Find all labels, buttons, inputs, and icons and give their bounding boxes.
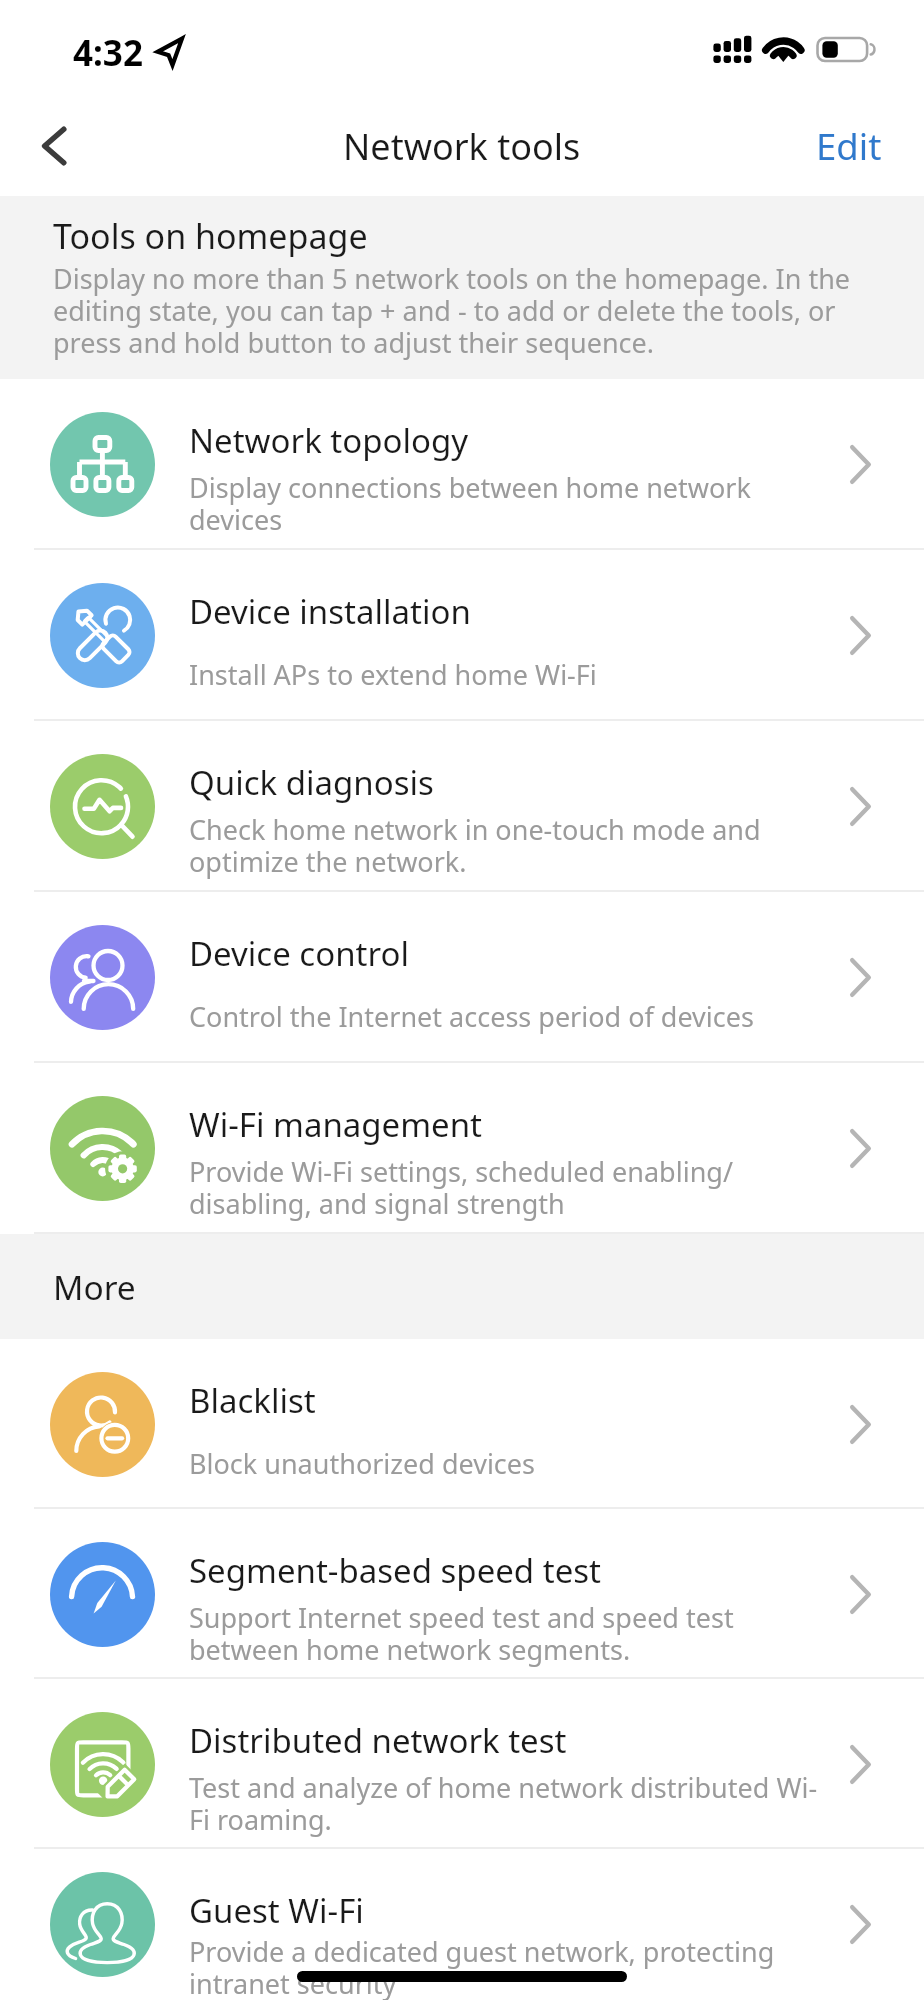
button[interactable]: Quick diagnosis (0, 721, 924, 892)
button[interactable]: Guest Wi-Fi (0, 1849, 924, 2000)
staticText: Network tools (343, 122, 581, 171)
button[interactable]: Blacklist (0, 1339, 924, 1509)
staticText: Wi-Fi management (189, 1102, 483, 1147)
staticText: Check home network in one-touch mode and… (189, 811, 829, 880)
staticText: Tools on homepage (53, 213, 368, 259)
button[interactable]: Back (0, 96, 110, 196)
button[interactable]: Segment-based speed test (0, 1509, 924, 1679)
staticText: Device control (189, 931, 409, 976)
staticText: Network topology (189, 418, 469, 463)
staticText: Distributed network test (189, 1718, 567, 1763)
staticText: Guest Wi-Fi (189, 1888, 364, 1933)
staticText: Edit (816, 121, 882, 171)
button[interactable]: Wi-Fi management (0, 1063, 924, 1234)
staticText: Provide Wi-Fi settings, scheduled enabli… (189, 1153, 829, 1222)
button[interactable]: Distributed network test (0, 1679, 924, 1849)
staticText: Quick diagnosis (189, 760, 434, 805)
staticText: Segment-based speed test (189, 1548, 601, 1593)
staticText: Provide a dedicated guest network, prote… (189, 1933, 829, 2000)
button[interactable]: Network topology (0, 379, 924, 550)
staticText: 4:32 (73, 29, 143, 77)
staticText: More (53, 1264, 136, 1310)
staticText: Display no more than 5 network tools on … (53, 260, 884, 361)
button[interactable]: Device control (0, 892, 924, 1063)
staticText: Blacklist (189, 1378, 316, 1423)
staticText: Device installation (189, 589, 471, 634)
button[interactable]: Edit (774, 96, 924, 196)
staticText: Display connections between home network… (189, 469, 829, 538)
staticText: Control the Internet access period of de… (189, 998, 829, 1035)
staticText: Block unauthorized devices (189, 1445, 829, 1482)
staticText: Support Internet speed test and speed te… (189, 1599, 829, 1668)
staticText: Install APs to extend home Wi-Fi (189, 656, 829, 693)
button[interactable]: Device installation (0, 550, 924, 721)
staticText: Test and analyze of home network distrib… (189, 1769, 829, 1838)
